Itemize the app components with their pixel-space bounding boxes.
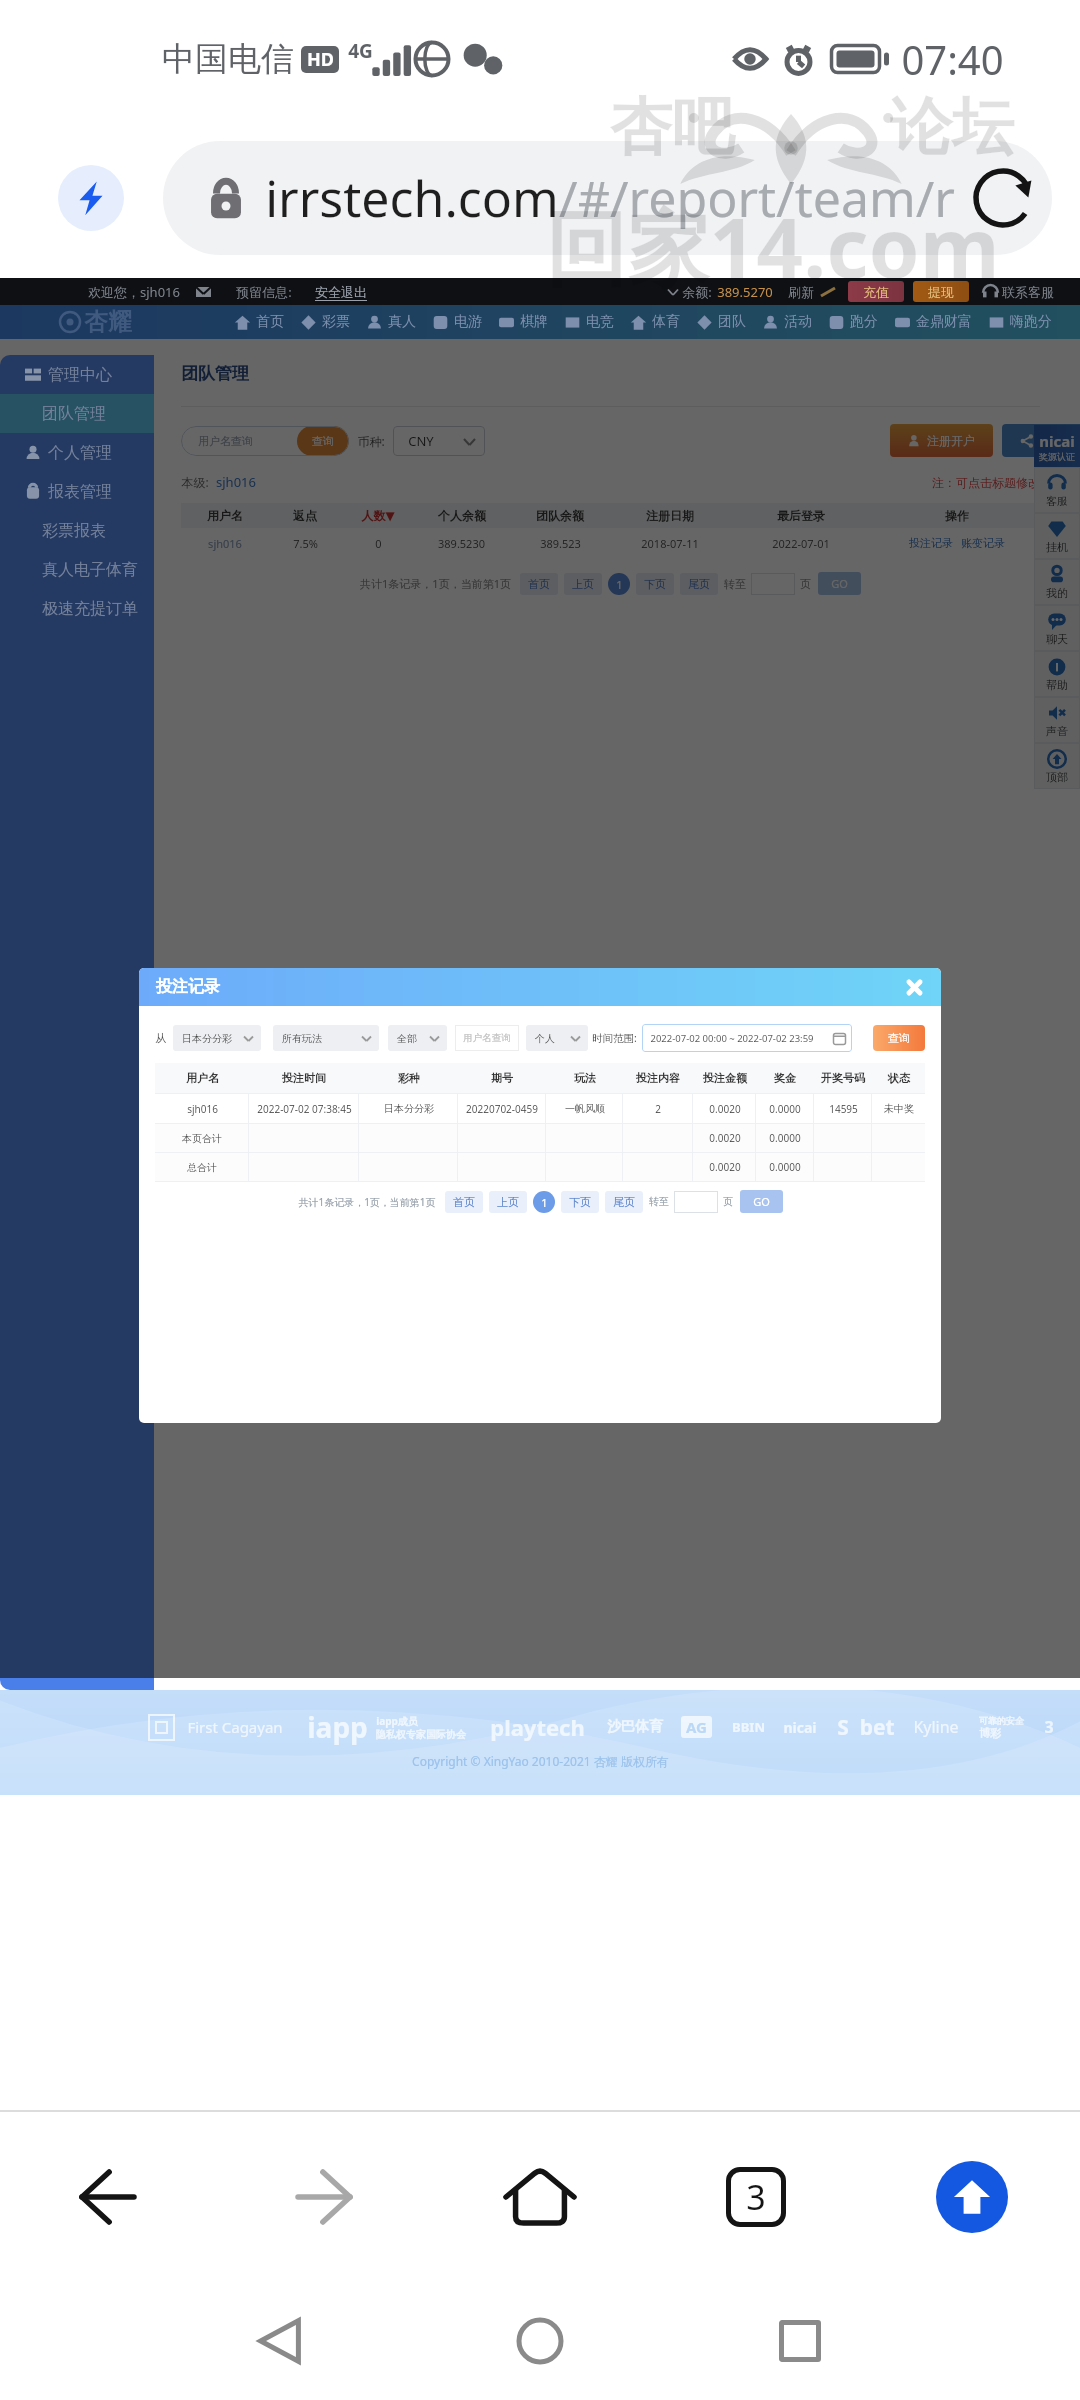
staticText: 沙巴体育 [607, 1718, 663, 1736]
staticText: 博彩 [979, 1726, 1001, 1740]
button[interactable]: 充值 [848, 281, 904, 302]
staticText: 转至 [724, 577, 746, 591]
button[interactable]: GO [740, 1190, 783, 1213]
button[interactable]: 挂机 [1034, 513, 1080, 559]
button[interactable]: 电竞 [556, 313, 622, 331]
staticText: 用户名 [186, 1071, 219, 1085]
staticText: 注册开户 [927, 433, 975, 448]
button[interactable]: 我的 [1034, 559, 1080, 605]
staticText: 本级: [181, 474, 209, 490]
button[interactable]: 个人管理 [0, 433, 154, 472]
button[interactable]: 个人 [526, 1025, 588, 1051]
button[interactable]: Back [0, 2112, 216, 2282]
staticText: 欢迎您，sjh016 [88, 283, 180, 301]
staticText: 上页 [497, 1195, 519, 1209]
button[interactable]: 首页 [445, 1191, 483, 1213]
button[interactable]: irrstech.com [163, 141, 1052, 255]
button[interactable]: Home [410, 2282, 670, 2400]
button[interactable]: 注册开户 [890, 424, 993, 457]
button[interactable]: 报表管理 [0, 472, 154, 511]
staticText: 0.0000 [769, 1131, 801, 1145]
button[interactable]: 1 [608, 573, 630, 595]
button[interactable]: 客服 [1034, 467, 1080, 513]
button[interactable]: 首页 [226, 313, 292, 331]
button[interactable]: 真人电子体育 [0, 550, 154, 589]
button[interactable]: Home [432, 2112, 648, 2282]
staticText: 本页合计 [182, 1132, 222, 1145]
staticText: 投注内容 [636, 1071, 680, 1085]
staticText: 跑分 [850, 313, 878, 331]
staticText: 7.5% [293, 536, 318, 551]
staticText: 顶部 [1046, 770, 1068, 784]
button[interactable]: Forward [216, 2112, 432, 2282]
staticText: 1 [541, 1195, 548, 1210]
staticText: 推广链接 [1039, 433, 1080, 448]
button[interactable]: 嗨跑分 [980, 313, 1060, 331]
button[interactable]: 用户名查询 [181, 426, 349, 456]
staticText: 论坛 [890, 88, 1014, 166]
staticText: 时间范围: [592, 1031, 637, 1045]
button[interactable]: 跑分 [820, 313, 886, 331]
staticText: 余额: [682, 283, 712, 301]
button[interactable]: 所有玩法 [273, 1025, 379, 1051]
button[interactable]: 查询 [873, 1025, 925, 1051]
button[interactable]: Turbo mode [58, 165, 124, 231]
staticText: sjh016 [208, 536, 242, 551]
button[interactable]: 彩票 [292, 313, 358, 331]
staticText: 上页 [572, 577, 594, 591]
staticText: sjh016 [187, 1102, 218, 1116]
button[interactable]: CNY [393, 426, 485, 456]
staticText: 0.0000 [769, 1102, 801, 1116]
button[interactable]: 电游 [424, 313, 490, 331]
staticText: 2022-07-01 [772, 536, 830, 551]
button[interactable]: 聊天 [1034, 605, 1080, 651]
button[interactable]: 体育 [622, 313, 688, 331]
staticText: Copyright © XingYao 2010-2021 杏耀 版权所有 [412, 1753, 669, 1769]
staticText: 嗨跑分 [1010, 313, 1052, 331]
staticText: 日本分分彩 [384, 1102, 434, 1115]
button[interactable]: 首页 [520, 573, 558, 595]
button[interactable]: 提现 [913, 281, 969, 302]
button[interactable]: 2022-07-02 00:00 ~ 2022-07-02 23:59 [642, 1024, 852, 1052]
button[interactable]: 1 [533, 1191, 555, 1213]
staticText: 彩票 [322, 313, 350, 331]
button[interactable]: 管理中心 [0, 355, 154, 394]
button[interactable]: 上页 [489, 1191, 527, 1213]
button[interactable]: 声音 [1034, 697, 1080, 743]
button[interactable]: 用户名查询 [455, 1025, 519, 1051]
button[interactable]: Scroll to top [864, 2112, 1080, 2282]
staticText: 总合计 [187, 1161, 217, 1174]
staticText: 报表管理 [48, 482, 112, 502]
button[interactable]: Back [150, 2282, 410, 2400]
button[interactable]: 推广链接 [1002, 424, 1080, 457]
button[interactable]: 下页 [636, 573, 674, 595]
button[interactable]: 彩票报表 [0, 511, 154, 550]
staticText: 首页 [256, 313, 284, 331]
button[interactable]: 尾页 [605, 1191, 643, 1213]
button[interactable]: Close dialog [895, 968, 933, 1006]
button[interactable]: Reload page [960, 155, 1046, 241]
button[interactable]: 团队 [688, 313, 754, 331]
staticText: 投注记录 [156, 977, 220, 997]
button[interactable]: 全部 [388, 1025, 447, 1051]
staticText: 从 [155, 1031, 166, 1045]
staticText: 个人管理 [48, 443, 112, 463]
button[interactable]: 棋牌 [490, 313, 556, 331]
staticText: 0.0000 [769, 1160, 801, 1174]
staticText: 所有玩法 [282, 1032, 322, 1045]
button[interactable]: GO [818, 572, 861, 595]
button[interactable]: 真人 [358, 313, 424, 331]
button[interactable]: 团队管理 [0, 394, 154, 433]
button[interactable]: 下页 [561, 1191, 599, 1213]
button[interactable]: 金鼎财富 [886, 313, 980, 331]
button[interactable]: 活动 [754, 313, 820, 331]
button[interactable]: 顶部 [1034, 743, 1080, 789]
button[interactable]: Recents [670, 2282, 930, 2400]
staticText: 刷新 [788, 284, 814, 300]
button[interactable]: Tabs [648, 2112, 864, 2282]
button[interactable]: 帮助 [1034, 651, 1080, 697]
button[interactable]: 日本分分彩 [173, 1025, 261, 1051]
button[interactable]: 上页 [564, 573, 602, 595]
button[interactable]: 极速充提订单 [0, 589, 154, 628]
button[interactable]: 尾页 [680, 573, 718, 595]
